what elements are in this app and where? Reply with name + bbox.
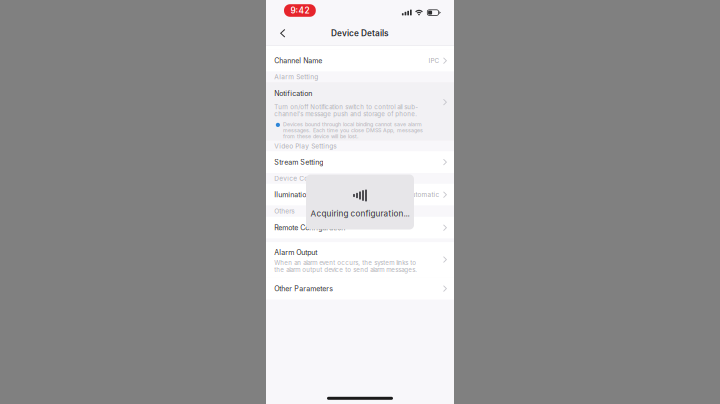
staticText: Ilumination bbox=[274, 190, 310, 199]
staticText: Channel Name bbox=[274, 56, 322, 65]
staticText: the alarm output device to send alarm me… bbox=[274, 266, 417, 273]
staticText: Other Parameters bbox=[274, 284, 333, 293]
button[interactable]: Back bbox=[266, 22, 293, 45]
staticText: Turn on/off Notification switch to contr… bbox=[274, 103, 418, 111]
staticText: Remote Configuration bbox=[274, 223, 345, 232]
staticText: When an alarm event occurs, the system l… bbox=[274, 259, 416, 266]
staticText: Device Details bbox=[331, 28, 389, 38]
button[interactable]: Notification bbox=[266, 82, 454, 118]
staticText: Notification bbox=[274, 89, 312, 98]
staticText: Acquiring configuration... bbox=[310, 209, 409, 218]
staticText: Automatic bbox=[407, 191, 439, 198]
button[interactable]: Stream Setting bbox=[266, 151, 454, 173]
button[interactable]: Other Parameters bbox=[266, 278, 454, 299]
staticText: Device Configuration bbox=[274, 174, 342, 182]
staticText: Video Play Settings bbox=[274, 142, 336, 150]
staticText: Alarm Output bbox=[274, 248, 317, 257]
staticText: IPC bbox=[428, 57, 439, 64]
button[interactable]: Remote Configuration bbox=[266, 217, 454, 239]
staticText: channel's message push and storage of ph… bbox=[274, 110, 417, 118]
staticText: Alarm Setting bbox=[274, 73, 318, 81]
staticText: messages. Each time you close DMSS App, … bbox=[283, 127, 423, 134]
staticText: Others bbox=[274, 207, 294, 215]
staticText: Stream Setting bbox=[274, 158, 323, 166]
button[interactable]: Ilumination bbox=[266, 184, 454, 206]
staticText: 9:42 bbox=[290, 5, 309, 15]
button[interactable]: Alarm Output bbox=[266, 242, 454, 278]
staticText: from these device will be lost. bbox=[283, 133, 359, 140]
staticText: Devices bound through local binding cann… bbox=[283, 121, 422, 128]
button[interactable]: Channel Name bbox=[266, 50, 454, 72]
